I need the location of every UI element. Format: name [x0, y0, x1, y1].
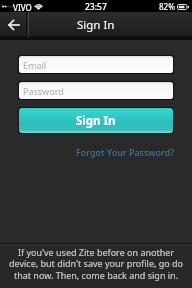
button[interactable]: Password: [19, 82, 173, 99]
staticText: 82%: [159, 1, 175, 12]
staticText: Forgot Your Password?: [76, 146, 175, 158]
button[interactable]: Back: [0, 12, 28, 38]
staticText: Sign In: [76, 113, 116, 129]
staticText: If you've used Zite before on another de…: [7, 246, 185, 282]
staticText: VIVO: [13, 2, 32, 13]
button[interactable]: Email: [19, 56, 173, 73]
staticText: Sign In: [77, 17, 115, 33]
staticText: Password: [23, 85, 64, 97]
button[interactable]: Sign In: [19, 108, 173, 133]
button[interactable]: Forgot Your Password?: [76, 146, 175, 158]
staticText: 23:57: [85, 1, 107, 13]
staticText: Email: [23, 59, 47, 71]
